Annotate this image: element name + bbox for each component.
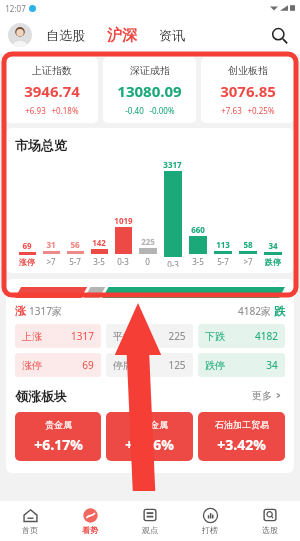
staticText: 下跌 [205,330,225,343]
button[interactable]: 能源金属 [106,412,193,461]
button[interactable]: 市场总览 [6,128,294,273]
button[interactable]: 上证指数 [6,57,98,123]
button[interactable]: 平盘 [106,324,193,348]
staticText: 225 [141,236,155,247]
button[interactable]: 下跌 [198,324,285,348]
button[interactable]: 选股 [240,501,300,541]
staticText: -0.00% [149,105,175,116]
staticText: 0 [145,256,150,267]
staticText: +6.17% [34,435,83,454]
button[interactable]: 贵金属 [15,412,101,461]
staticText: 资讯 [159,27,185,43]
button[interactable]: 更多 [249,386,285,405]
staticText: 13080.09 [117,81,182,101]
staticText: 上涨 [22,330,42,343]
staticText: >7 [46,256,56,267]
button[interactable]: 打榜 [180,501,240,541]
staticText: 沪深 [107,26,137,45]
staticText: 34 [266,358,278,372]
staticText: 上证指数 [32,64,72,77]
staticText: 观点 [142,525,158,535]
staticText: 69 [22,240,32,251]
button[interactable]: 沪深 [103,22,141,49]
staticText: 142 [92,237,106,248]
staticText: 31 [46,239,56,250]
button[interactable]: 上涨 [15,324,101,348]
button[interactable]: 跌停 [198,353,285,377]
staticText: 深证成指 [130,64,170,77]
staticText: 0-3 [117,256,129,267]
staticText: 跌停 [205,359,225,372]
staticText: 5-7 [69,256,81,267]
staticText: 4182 [255,329,278,343]
button[interactable]: 自选股 [42,23,89,47]
staticText: 125 [168,358,186,372]
staticText: 停牌 [113,359,133,372]
button[interactable]: Search [266,22,292,48]
staticText: +0.25% [247,105,275,116]
button[interactable]: 石油加工贸易 [198,412,285,461]
button[interactable]: 停牌 [106,353,193,377]
staticText: 能源金属 [132,419,168,430]
staticText: 打榜 [202,525,218,535]
staticText: +6.93 [25,105,46,116]
staticText: 1317 [71,329,94,343]
staticText: 领涨板块 [15,388,67,404]
staticText: +3.56% [125,435,174,454]
staticText: 4182家 [238,304,271,318]
staticText: 3-5 [93,256,105,267]
staticText: 更多 [252,389,272,402]
staticText: 113 [216,239,230,250]
staticText: 1019 [114,215,133,226]
staticText: 看势 [82,525,98,535]
button[interactable]: 涨停 [15,353,101,377]
staticText: 涨停 [22,359,42,372]
button[interactable]: 创业板指 [201,57,294,123]
staticText: 市场总览 [15,137,67,153]
staticText: 225 [168,329,186,343]
staticText: 56 [70,239,80,250]
staticText: 涨 [15,304,26,318]
staticText: >7 [243,256,253,267]
staticText: 3946.74 [24,81,80,101]
button[interactable]: 观点 [120,501,180,541]
staticText: 创业板指 [228,64,268,77]
staticText: 12:07 [5,3,26,14]
staticText: 69 [82,358,94,372]
staticText: 5-7 [217,256,229,267]
staticText: +0.18% [51,105,79,116]
button[interactable]: 首页 [0,501,60,541]
staticText: +7.63 [221,105,242,116]
staticText: 平盘 [113,330,133,343]
staticText: 58 [243,239,253,250]
staticText: 3076.85 [220,81,276,101]
staticText: 贵金属 [45,419,72,430]
staticText: 3317 [163,159,182,170]
staticText: 1317家 [29,304,62,318]
staticText: 跌停 [265,257,281,267]
button[interactable]: Profile [8,23,32,47]
staticText: 自选股 [46,27,85,43]
staticText: 选股 [262,525,278,535]
button[interactable]: 资讯 [155,23,189,47]
button[interactable]: 深证成指 [103,57,196,123]
staticText: +3.42% [217,435,266,454]
staticText: 0-3 [167,259,179,267]
button[interactable]: 看势 [60,501,120,541]
staticText: 首页 [22,525,38,535]
staticText: 34 [268,240,278,251]
staticText: 660 [191,224,205,235]
staticText: 石油加工贸易 [215,419,269,430]
staticText: 跌 [274,304,285,318]
staticText: 涨停 [19,257,35,267]
staticText: 3-5 [192,256,204,267]
staticText: -0.40 [125,105,144,116]
